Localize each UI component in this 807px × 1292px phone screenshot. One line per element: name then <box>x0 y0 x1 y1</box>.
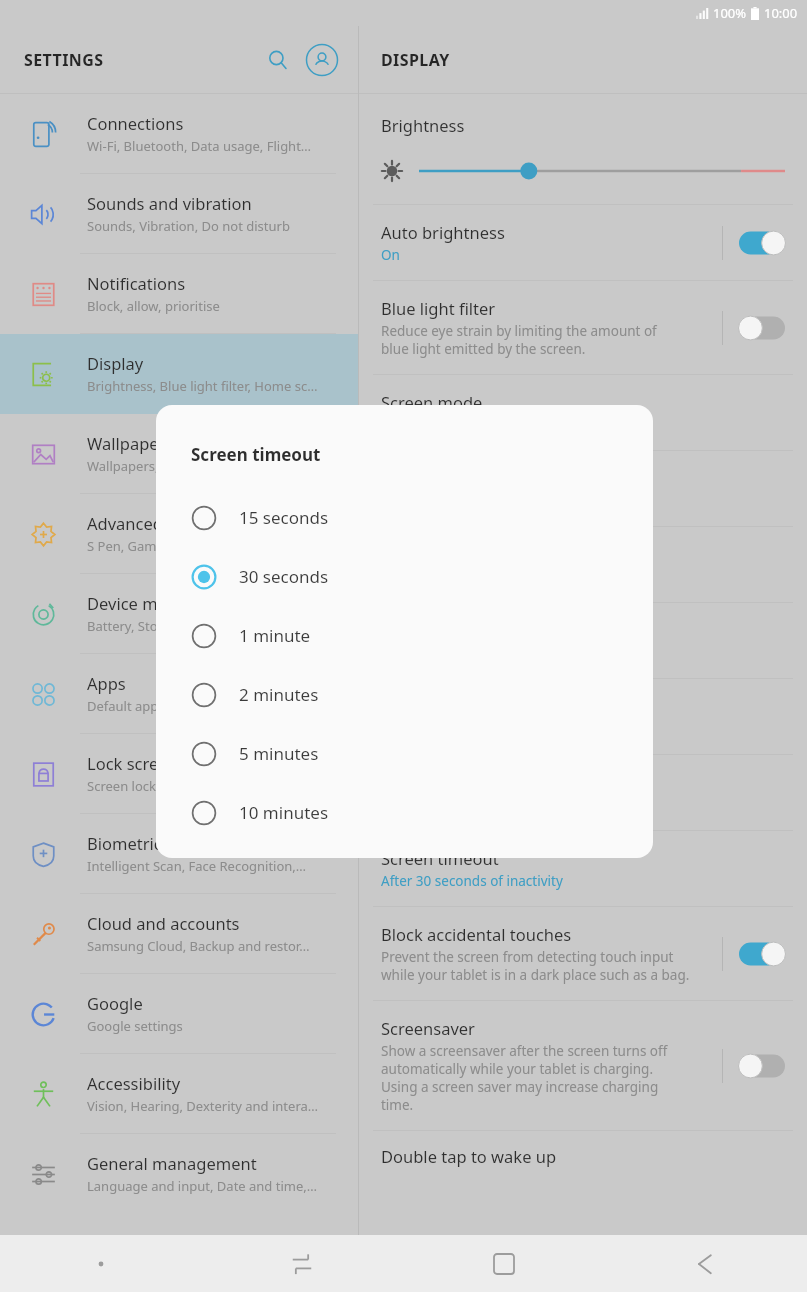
button[interactable]: 1 minute <box>156 606 653 665</box>
button[interactable]: Auto brightness <box>359 205 807 280</box>
button[interactable]: Connections <box>0 94 358 174</box>
button[interactable]: Home screen <box>359 527 807 602</box>
staticText: Battery, Storage, Memory <box>87 617 244 635</box>
staticText: Vision, Hearing, Dexterity and intera… <box>87 1097 319 1115</box>
button[interactable]: Auto brightness toggle <box>739 230 785 256</box>
staticText: Brightness, Blue light filter, Home sc… <box>87 377 318 395</box>
staticText: Lock screen and security <box>87 752 277 774</box>
staticText: 10:00 <box>764 4 798 22</box>
staticText: General management <box>87 1152 257 1174</box>
button[interactable]: Brightness slider <box>419 160 785 182</box>
staticText: Screen mode <box>381 391 483 413</box>
button[interactable]: 5 minutes <box>156 724 653 783</box>
button[interactable]: Device maintenance <box>0 574 358 654</box>
staticText: Double tap to wake up <box>381 1145 557 1167</box>
staticText: Auto brightness <box>381 221 505 243</box>
staticText: Sounds, Vibration, Do not disturb <box>87 217 290 235</box>
button[interactable]: Screensaver toggle <box>739 1053 785 1079</box>
staticText: Advanced features <box>87 512 232 534</box>
staticText: 100% <box>713 4 747 22</box>
button[interactable]: Navigation bar <box>359 755 807 830</box>
staticText: Wallpapers and themes <box>87 432 270 454</box>
staticText: Screensaver <box>381 1017 475 1039</box>
button[interactable]: Screen timeout <box>359 831 807 906</box>
button[interactable]: Google <box>0 974 358 1054</box>
button[interactable]: Notifications <box>0 254 358 334</box>
staticText: DISPLAY <box>381 49 450 71</box>
staticText: Notifications <box>87 272 186 294</box>
staticText: S Pen, Game Launcher, Dual Messen… <box>87 537 318 555</box>
staticText: Display <box>87 352 144 374</box>
staticText: Accessibility <box>87 1072 181 1094</box>
staticText: Wi-Fi, Bluetooth, Data usage, Flight… <box>87 137 312 155</box>
staticText: Language and input, Date and time,… <box>87 1177 318 1195</box>
button[interactable]: Full screen apps <box>359 603 807 678</box>
staticText: 2 minutes <box>239 683 319 706</box>
staticText: Biometrics <box>87 832 170 854</box>
staticText: Screen lock type, Find My Mobile <box>87 777 286 795</box>
button[interactable]: Sounds and vibration <box>0 174 358 254</box>
button[interactable]: Apps <box>0 654 358 734</box>
button[interactable]: 2 minutes <box>156 665 653 724</box>
staticText: Device maintenance <box>87 592 244 614</box>
staticText: Prevent the screen from detecting touch … <box>381 948 690 984</box>
button[interactable]: Screensaver <box>359 1001 807 1130</box>
staticText: On <box>381 246 400 264</box>
button[interactable]: Search <box>256 38 300 82</box>
button[interactable]: Accessibility <box>0 1054 358 1134</box>
staticText: Screen timeout <box>191 443 321 466</box>
staticText: 15 seconds <box>239 506 329 529</box>
button[interactable]: Screen mode <box>359 375 807 450</box>
button[interactable]: Block accidental touches toggle <box>739 941 785 967</box>
staticText: Default apps, App permissions <box>87 697 274 715</box>
staticText: Apps <box>87 672 126 694</box>
button[interactable]: Biometrics <box>0 814 358 894</box>
staticText: 30 seconds <box>239 565 329 588</box>
staticText: 10 minutes <box>239 801 329 824</box>
button[interactable]: Block accidental touches <box>359 907 807 1000</box>
button[interactable]: Cloud and accounts <box>0 894 358 974</box>
button[interactable]: Recents <box>201 1235 403 1292</box>
button[interactable]: 30 seconds <box>156 547 653 606</box>
button[interactable]: 15 seconds <box>156 488 653 547</box>
staticText: SETTINGS <box>24 49 104 71</box>
button[interactable]: Account <box>300 38 344 82</box>
staticText: Google settings <box>87 1017 183 1035</box>
button[interactable]: Back <box>605 1235 807 1292</box>
staticText: Blue light filter <box>381 297 496 319</box>
button[interactable]: Show keyboard <box>0 1235 201 1292</box>
staticText: Block, allow, prioritise <box>87 297 220 315</box>
button[interactable]: Advanced features <box>0 494 358 574</box>
staticText: 5 minutes <box>239 742 319 765</box>
button[interactable]: Blue light filter toggle <box>739 315 785 341</box>
staticText: Google <box>87 992 143 1014</box>
staticText: Reduce eye strain by limiting the amount… <box>381 322 657 358</box>
button[interactable]: Screen zoom and font <box>359 451 807 526</box>
button[interactable]: Lock screen and security <box>0 734 358 814</box>
staticText: Block accidental touches <box>381 923 572 945</box>
button[interactable]: Icon frames <box>359 679 807 754</box>
staticText: After 30 seconds of inactivity <box>381 872 563 890</box>
staticText: Screen timeout <box>381 847 499 869</box>
staticText: Sounds and vibration <box>87 192 252 214</box>
staticText: Wallpapers, Themes, Icons <box>87 457 250 475</box>
button[interactable]: Display <box>0 334 358 414</box>
staticText: Cloud and accounts <box>87 912 240 934</box>
staticText: Samsung Cloud, Backup and restor… <box>87 937 310 955</box>
button[interactable]: General management <box>0 1134 358 1214</box>
button[interactable]: Blue light filter <box>359 281 807 374</box>
button[interactable]: Wallpapers and themes <box>0 414 358 494</box>
button[interactable]: Double tap to wake up <box>359 1131 807 1167</box>
button[interactable]: 10 minutes <box>156 783 653 842</box>
button[interactable]: Home <box>403 1235 605 1292</box>
